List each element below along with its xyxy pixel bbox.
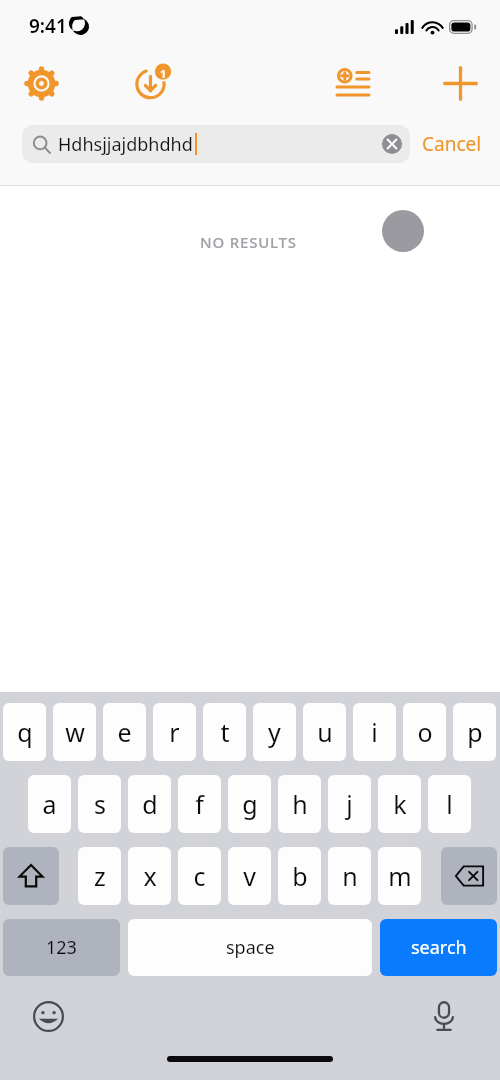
staticText: x (143, 859, 157, 893)
staticText: g (242, 787, 258, 821)
button[interactable]: x (128, 847, 171, 905)
button[interactable]: f (178, 775, 221, 833)
staticText: 9:41 (29, 13, 67, 39)
button[interactable]: g (228, 775, 271, 833)
button[interactable]: c (178, 847, 221, 905)
staticText: Hdhsjjajdbhdhd (58, 132, 193, 157)
staticText: s (94, 787, 106, 821)
staticText: m (388, 859, 412, 893)
staticText: j (346, 787, 353, 821)
button[interactable]: h (278, 775, 321, 833)
button[interactable]: Settings (16, 58, 66, 108)
staticText: i (371, 715, 378, 749)
staticText: h (292, 787, 308, 821)
staticText: y (268, 715, 281, 749)
button[interactable]: y (253, 703, 296, 761)
button[interactable]: o (403, 703, 446, 761)
staticText: a (42, 787, 57, 821)
button[interactable]: Cancel (410, 131, 484, 157)
button[interactable]: n (328, 847, 371, 905)
button[interactable]: d (128, 775, 171, 833)
staticText: NO RESULTS (200, 232, 297, 252)
button[interactable]: b (278, 847, 321, 905)
staticText: n (342, 859, 358, 893)
staticText: l (446, 787, 453, 821)
button[interactable]: m (378, 847, 421, 905)
button[interactable]: r (153, 703, 196, 761)
button[interactable]: k (378, 775, 421, 833)
button[interactable]: Dictation (420, 992, 468, 1040)
staticText: t (220, 715, 230, 749)
staticText: search (411, 935, 467, 960)
button[interactable]: e (103, 703, 146, 761)
button[interactable]: j (328, 775, 371, 833)
button[interactable]: s (78, 775, 121, 833)
button[interactable]: Hdhsjjajdbhdhd (22, 125, 410, 163)
staticText: w (65, 715, 85, 749)
staticText: q (17, 715, 33, 749)
button[interactable]: Shift (3, 847, 59, 905)
staticText: d (142, 787, 158, 821)
staticText: r (169, 715, 180, 749)
staticText: u (317, 715, 333, 749)
button[interactable]: u (303, 703, 346, 761)
staticText: v (243, 859, 256, 893)
button[interactable]: Delete (441, 847, 497, 905)
staticText: z (94, 859, 106, 893)
staticText: e (117, 715, 132, 749)
staticText: c (193, 859, 206, 893)
button[interactable]: i (353, 703, 396, 761)
button[interactable]: z (78, 847, 121, 905)
button[interactable]: Clear text (382, 134, 402, 154)
button[interactable]: space (128, 919, 372, 976)
button[interactable]: 123 (3, 919, 120, 976)
button[interactable]: search (380, 919, 497, 976)
staticText: b (292, 859, 308, 893)
button[interactable]: t (203, 703, 246, 761)
staticText: Cancel (422, 131, 482, 157)
button[interactable]: Emoji (24, 992, 72, 1040)
staticText: p (467, 715, 483, 749)
button[interactable]: Downloads (128, 55, 180, 107)
button[interactable]: q (3, 703, 46, 761)
button[interactable]: p (453, 703, 496, 761)
staticText: 1 (160, 66, 167, 81)
button[interactable]: Add to list (328, 58, 378, 108)
staticText: k (393, 787, 407, 821)
staticText: f (195, 787, 204, 821)
staticText: space (226, 935, 275, 960)
button[interactable]: v (228, 847, 271, 905)
button[interactable]: l (428, 775, 471, 833)
button[interactable]: w (53, 703, 96, 761)
button[interactable]: Add (434, 57, 486, 109)
staticText: 123 (46, 935, 77, 960)
button[interactable]: a (28, 775, 71, 833)
staticText: o (417, 715, 433, 749)
